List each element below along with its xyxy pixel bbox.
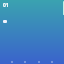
staticText: 01 xyxy=(3,2,9,9)
button[interactable] xyxy=(3,20,7,23)
